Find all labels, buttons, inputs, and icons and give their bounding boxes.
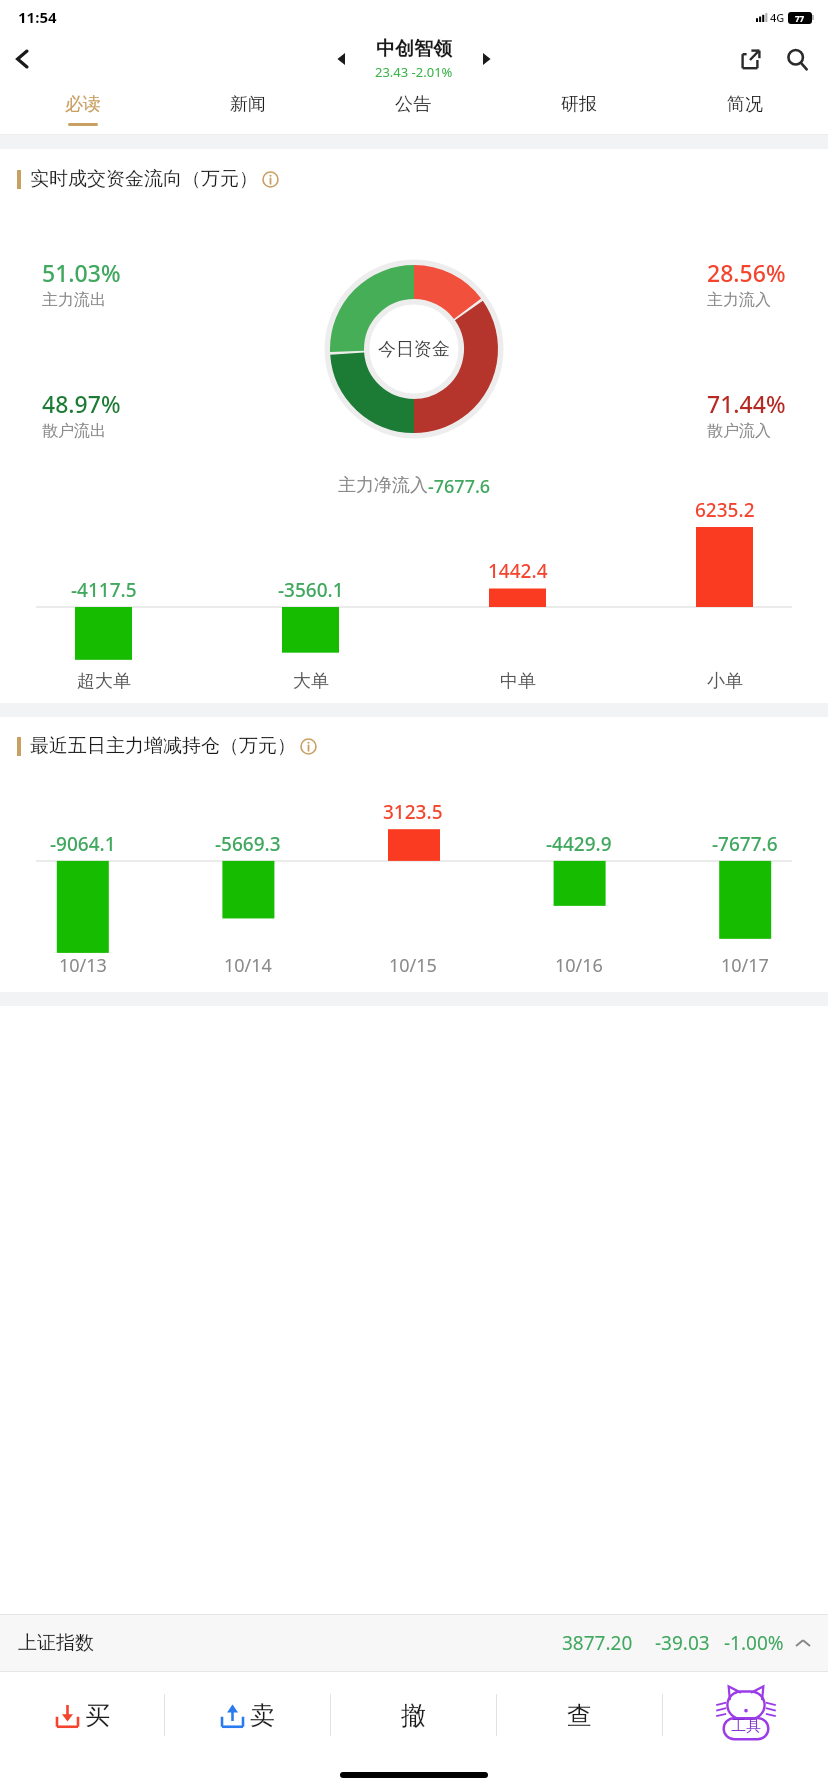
- staticText: 小单: [707, 670, 743, 693]
- staticText: 研报: [561, 93, 597, 116]
- staticText: -39.03: [655, 1630, 710, 1656]
- staticText: 11:54: [18, 7, 57, 27]
- staticText: 71.44%: [707, 388, 786, 419]
- staticText: -4429.9: [546, 831, 612, 857]
- staticText: 中创智领: [376, 37, 452, 61]
- button[interactable]: 查: [497, 1672, 662, 1758]
- button[interactable]: Search: [774, 36, 820, 82]
- staticText: 10/16: [555, 953, 603, 978]
- staticText: 主力流入: [707, 290, 771, 310]
- staticText: 今日资金: [378, 338, 450, 361]
- staticText: 4G: [770, 10, 785, 25]
- staticText: 散户流入: [707, 421, 771, 441]
- button[interactable]: 简况: [662, 84, 828, 134]
- staticText: -9064.1: [50, 831, 116, 857]
- button[interactable]: Info: [261, 170, 279, 188]
- staticText: 最近五日主力增减持仓（万元）: [30, 734, 296, 758]
- staticText: 新闻: [230, 93, 266, 116]
- staticText: 主力流出: [42, 290, 106, 310]
- staticText: 48.97%: [42, 388, 121, 419]
- staticText: 公告: [395, 93, 431, 116]
- staticText: 中单: [500, 670, 536, 693]
- staticText: 主力净流入: [338, 474, 428, 497]
- button[interactable]: Info: [299, 737, 317, 755]
- button[interactable]: 撤: [331, 1672, 496, 1758]
- staticText: -5669.3: [215, 831, 281, 857]
- staticText: 3123.5: [383, 799, 443, 825]
- button[interactable]: Next stock: [466, 39, 506, 79]
- staticText: 1442.4: [488, 558, 548, 584]
- button[interactable]: 新闻: [165, 84, 330, 134]
- staticText: 10/15: [389, 953, 437, 978]
- staticText: 3877.20: [562, 1630, 633, 1656]
- staticText: 10/17: [721, 953, 769, 978]
- staticText: 23.43 -2.01%: [375, 63, 453, 81]
- staticText: 实时成交资金流向（万元）: [30, 167, 258, 191]
- staticText: -7677.6: [428, 474, 491, 499]
- staticText: 查: [567, 1700, 592, 1731]
- button[interactable]: 卖: [165, 1672, 330, 1758]
- button[interactable]: 上证指数: [0, 1615, 828, 1671]
- staticText: 工具: [731, 1717, 761, 1736]
- staticText: -3560.1: [278, 577, 344, 603]
- staticText: 必读: [65, 93, 101, 116]
- staticText: 6235.2: [695, 497, 755, 523]
- staticText: 10/14: [224, 953, 272, 978]
- button[interactable]: 工具: [663, 1672, 828, 1758]
- staticText: -7677.6: [712, 831, 778, 857]
- staticText: 撤: [401, 1700, 426, 1731]
- staticText: 77: [795, 13, 805, 24]
- staticText: -4117.5: [71, 577, 137, 603]
- staticText: 51.03%: [42, 257, 121, 288]
- button[interactable]: 研报: [496, 84, 662, 134]
- staticText: 买: [85, 1700, 110, 1731]
- staticText: 28.56%: [707, 257, 786, 288]
- staticText: 上证指数: [18, 1631, 94, 1655]
- staticText: 散户流出: [42, 421, 106, 441]
- button[interactable]: 买: [0, 1672, 164, 1758]
- staticText: 卖: [250, 1700, 275, 1731]
- staticText: 简况: [727, 93, 763, 116]
- staticText: 10/13: [59, 953, 107, 978]
- button[interactable]: 公告: [330, 84, 496, 134]
- button[interactable]: Share: [728, 36, 774, 82]
- staticText: -1.00%: [724, 1630, 784, 1656]
- button[interactable]: Back: [0, 36, 46, 82]
- staticText: 超大单: [77, 670, 131, 693]
- staticText: 大单: [293, 670, 329, 693]
- button[interactable]: 必读: [0, 84, 165, 134]
- button[interactable]: Previous stock: [322, 39, 362, 79]
